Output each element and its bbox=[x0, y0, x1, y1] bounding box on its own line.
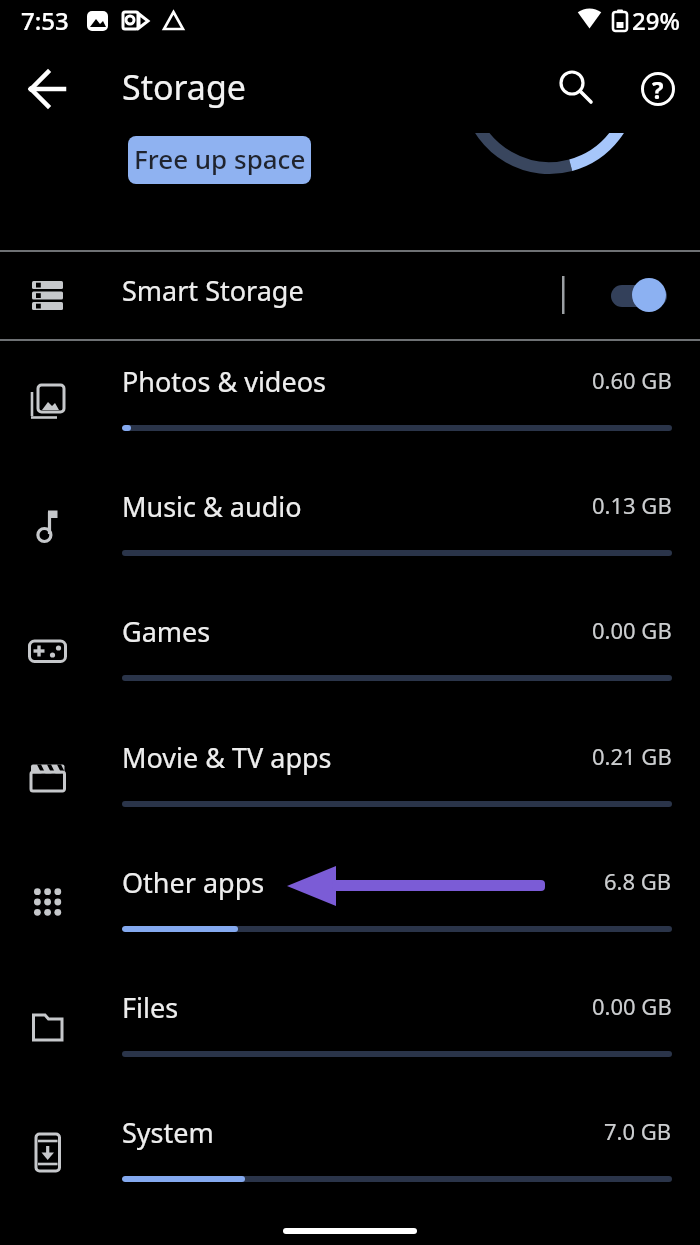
button[interactable]: Other apps bbox=[0, 842, 700, 967]
staticText: Files bbox=[122, 989, 179, 1026]
button[interactable]: Music & audio bbox=[0, 466, 700, 591]
button[interactable]: Smart Storage bbox=[0, 252, 700, 339]
staticText: 0.13 GB bbox=[592, 490, 672, 520]
staticText: Other apps bbox=[122, 864, 265, 901]
staticText: Movie & TV apps bbox=[122, 739, 332, 776]
staticText: Storage bbox=[122, 64, 247, 110]
staticText: 6.8 GB bbox=[604, 866, 672, 896]
staticText: Games bbox=[122, 613, 211, 650]
staticText: 0.60 GB bbox=[592, 365, 672, 395]
staticText: Music & audio bbox=[122, 488, 302, 525]
button[interactable]: ? bbox=[634, 65, 682, 113]
staticText: Smart Storage bbox=[122, 272, 304, 309]
staticText: Photos & videos bbox=[122, 363, 326, 400]
button[interactable]: Movie & TV apps bbox=[0, 717, 700, 842]
button[interactable] bbox=[550, 61, 598, 109]
button[interactable]: Games bbox=[0, 591, 700, 716]
staticText: 7.0 GB bbox=[604, 1116, 672, 1146]
staticText: 29% bbox=[632, 4, 680, 37]
staticText: 0.21 GB bbox=[592, 741, 672, 771]
staticText: 0.00 GB bbox=[592, 991, 672, 1021]
button[interactable]: Photos & videos bbox=[0, 341, 700, 466]
staticText: 0.00 GB bbox=[592, 615, 672, 645]
button[interactable]: Files bbox=[0, 967, 700, 1092]
button[interactable] bbox=[605, 273, 671, 317]
staticText: ? bbox=[652, 73, 664, 106]
staticText: 7:53 bbox=[21, 4, 69, 37]
staticText: Free up space bbox=[134, 141, 306, 176]
button[interactable] bbox=[23, 65, 71, 113]
button[interactable]: System bbox=[0, 1092, 700, 1217]
staticText: System bbox=[122, 1114, 214, 1151]
button[interactable]: Free up space bbox=[128, 136, 311, 184]
